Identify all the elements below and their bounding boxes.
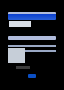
button[interactable]: [8, 36, 56, 40]
button[interactable]: Submit: [28, 74, 36, 78]
button[interactable]: [8, 12, 56, 20]
